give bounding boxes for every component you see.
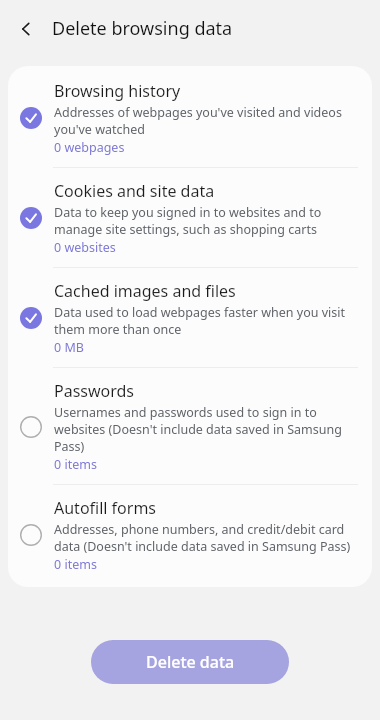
other: Not selected [20,524,42,546]
button[interactable]: Not selected [8,485,372,587]
staticText: Delete data [146,651,235,673]
staticText: Addresses, phone numbers, and credit/deb… [54,521,358,555]
staticText: 0 items [54,556,97,573]
button[interactable]: Delete data [91,640,289,684]
staticText: Cached images and files [54,280,236,302]
other: Selected [20,307,42,329]
button[interactable]: Not selected [8,368,372,484]
staticText: Passwords [54,380,135,402]
button[interactable]: Back [6,9,46,49]
button[interactable]: Selected [8,66,372,167]
staticText: 0 MB [54,339,84,356]
staticText: Delete browsing data [52,16,233,41]
other: Selected [20,207,42,229]
staticText: Data to keep you signed in to websites a… [54,204,358,238]
staticText: Browsing history [54,80,181,102]
staticText: 0 items [54,456,97,473]
staticText: 0 webpages [54,139,125,156]
staticText: Data used to load webpages faster when y… [54,304,358,338]
other: Not selected [20,416,42,438]
staticText: Usernames and passwords used to sign in … [54,404,358,455]
other: Selected [20,107,42,129]
staticText: Addresses of webpages you've visited and… [54,104,358,138]
button[interactable]: Selected [8,168,372,267]
button[interactable]: Selected [8,268,372,367]
staticText: Cookies and site data [54,180,215,202]
staticText: 0 websites [54,239,116,256]
staticText: Autofill forms [54,497,157,519]
